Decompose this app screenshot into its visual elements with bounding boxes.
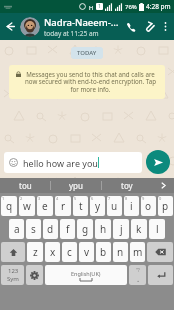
staticText: o (145, 199, 152, 213)
staticText: z (33, 245, 38, 259)
button[interactable]: More options (158, 13, 172, 40)
staticText: c (67, 245, 72, 259)
staticText: 0 (159, 196, 162, 201)
staticText: Sym (7, 275, 19, 283)
staticText: 9 (142, 196, 145, 201)
button[interactable]: a (9, 219, 24, 239)
staticText: 8 (125, 196, 128, 201)
staticText: 6 (91, 196, 94, 201)
button[interactable]: w (19, 196, 35, 216)
button[interactable]: Messages you send to this chat and calls… (9, 65, 165, 99)
staticText: i (130, 199, 133, 213)
button[interactable]: l (149, 219, 165, 239)
staticText: 76% (125, 3, 137, 11)
staticText: toy (121, 180, 133, 191)
button[interactable]: c (62, 242, 77, 262)
staticText: s (31, 222, 36, 236)
button[interactable]: d (43, 219, 58, 239)
staticText: 7 (108, 196, 111, 201)
staticText: 4:28 pm (146, 2, 171, 11)
staticText: g (82, 222, 89, 236)
button[interactable]: Shift (1, 242, 25, 262)
staticText: h (100, 222, 107, 236)
button[interactable]: h (95, 219, 111, 239)
button[interactable]: j (113, 219, 129, 239)
staticText: 2 (20, 196, 23, 201)
button[interactable]: ypu (51, 178, 101, 193)
staticText: b (100, 245, 107, 259)
button[interactable]: Call (122, 13, 140, 40)
button[interactable]: 123 (1, 265, 24, 285)
button[interactable]: n (113, 242, 128, 262)
staticText: English(UK) (71, 270, 101, 277)
button[interactable]: tou (0, 178, 50, 193)
staticText: d (47, 222, 54, 236)
staticText: 3 (38, 196, 41, 201)
staticText: Nadra-Naeem-Sh… (44, 16, 122, 29)
staticText: tou (19, 180, 32, 191)
staticText: k (136, 222, 142, 236)
button[interactable]: m (130, 242, 145, 262)
button[interactable]: k (131, 219, 147, 239)
staticText: "? (136, 267, 140, 273)
button[interactable]: Enter (148, 265, 173, 285)
staticText: Messages you send to this chat and calls… (23, 70, 158, 94)
staticText: p (162, 199, 169, 213)
staticText: . (137, 273, 140, 284)
button[interactable]: x (45, 242, 60, 262)
button[interactable]: b (96, 242, 111, 262)
staticText: n (117, 245, 124, 259)
button[interactable]: e (37, 196, 53, 216)
staticText: 1 (98, 3, 101, 10)
staticText: q (6, 199, 13, 213)
staticText: H (89, 4, 94, 11)
staticText: v (84, 245, 90, 259)
staticText: x (50, 245, 56, 259)
button[interactable]: toy (102, 178, 152, 193)
button[interactable]: f (60, 219, 75, 239)
button[interactable]: Space (45, 265, 127, 285)
button[interactable]: Attach (140, 13, 158, 40)
button[interactable]: y (90, 196, 105, 216)
button[interactable]: v (79, 242, 94, 262)
button[interactable]: o (141, 196, 156, 216)
button[interactable]: t (73, 196, 88, 216)
button[interactable]: s (26, 219, 41, 239)
staticText: 4 (56, 196, 59, 201)
button[interactable]: Back (0, 13, 20, 40)
button[interactable]: Backspace (147, 242, 173, 262)
button[interactable]: hello how are you (4, 152, 142, 173)
button[interactable]: i (124, 196, 139, 216)
staticText: e (42, 199, 48, 213)
staticText: f (66, 222, 70, 236)
staticText: today at 11:25 am (44, 29, 99, 38)
staticText: TODAY (77, 49, 97, 57)
staticText: 123 (8, 267, 19, 275)
button[interactable]: Settings (26, 265, 43, 285)
button[interactable]: Send (146, 150, 170, 174)
button[interactable]: More suggestions (152, 178, 174, 193)
button[interactable]: g (77, 219, 93, 239)
button[interactable]: Nadra-Naeem-Sh… (44, 16, 122, 38)
staticText: j (120, 222, 123, 236)
staticText: ypu (69, 180, 83, 191)
staticText: 1 (2, 196, 5, 201)
button[interactable]: q (1, 196, 17, 216)
button[interactable]: p (158, 196, 173, 216)
staticText: 5 (74, 196, 77, 201)
staticText: u (111, 199, 118, 213)
button[interactable]: "? (129, 265, 146, 285)
button[interactable]: z (27, 242, 43, 262)
staticText: t (79, 199, 83, 213)
button[interactable]: r (55, 196, 71, 216)
staticText: w (23, 199, 31, 213)
staticText: m (133, 245, 143, 259)
staticText: hello how are you (23, 157, 98, 169)
staticText: a (14, 222, 20, 236)
button[interactable]: u (107, 196, 122, 216)
staticText: y (95, 199, 101, 213)
staticText: r (61, 199, 66, 213)
staticText: l (156, 222, 159, 236)
